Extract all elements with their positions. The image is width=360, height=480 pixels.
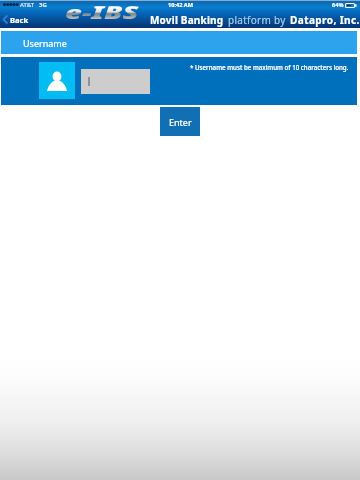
staticText: 64% bbox=[332, 1, 344, 9]
button[interactable]: User account bbox=[39, 62, 75, 99]
staticText: platform by bbox=[228, 13, 286, 27]
staticText: e-IBS bbox=[65, 0, 139, 25]
staticText: 3G bbox=[39, 1, 47, 9]
button[interactable]: Back bbox=[0, 10, 37, 28]
staticText: 10:42 AM bbox=[168, 1, 193, 9]
staticText: Back bbox=[10, 15, 29, 25]
staticText: Datapro, Inc. bbox=[290, 13, 360, 27]
staticText: Username bbox=[23, 37, 67, 49]
staticText: Movil Banking bbox=[150, 13, 224, 27]
staticText: AT&T bbox=[20, 1, 34, 9]
button[interactable]: Username bbox=[1, 31, 357, 54]
button[interactable]: Enter bbox=[160, 107, 200, 136]
button[interactable]: Username input bbox=[81, 69, 150, 94]
staticText: Enter bbox=[169, 116, 192, 128]
staticText: * Username must be maximum of 10 charact… bbox=[190, 63, 349, 71]
